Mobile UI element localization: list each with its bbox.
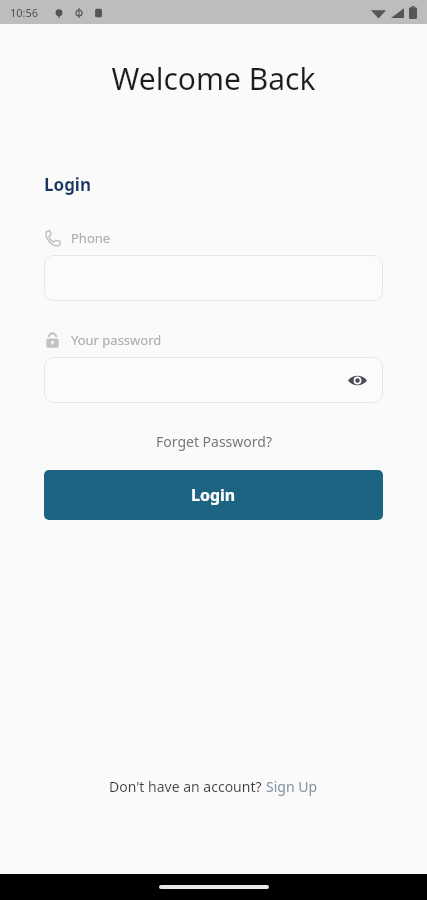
staticText: Phone	[71, 229, 111, 247]
button[interactable]: Forget Password?	[148, 429, 280, 454]
button[interactable]: Show password	[44, 357, 383, 403]
button[interactable]	[44, 255, 383, 301]
button[interactable]: Show password	[343, 366, 371, 394]
staticText: Login	[191, 484, 236, 506]
staticText: Don't have an account?	[109, 777, 266, 796]
button[interactable]: Sign Up	[266, 777, 318, 796]
staticText: Welcome Back	[0, 58, 427, 99]
staticText: Forget Password?	[156, 432, 272, 451]
button[interactable]: Login	[44, 470, 383, 520]
staticText: Login	[44, 173, 92, 196]
staticText: 10:56	[10, 5, 39, 20]
staticText: Your password	[71, 331, 162, 349]
staticText: Sign Up	[266, 777, 318, 796]
